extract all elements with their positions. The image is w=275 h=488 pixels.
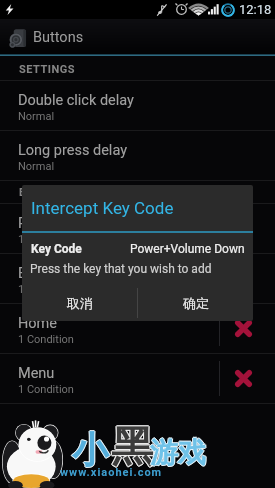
staticText: 确定 bbox=[183, 295, 209, 311]
staticText: Normal bbox=[18, 160, 55, 173]
staticText: 黑 bbox=[111, 422, 153, 475]
button[interactable]: Delete condition bbox=[220, 354, 266, 403]
staticText: 1 Condition bbox=[18, 383, 74, 396]
staticText: 游戏 bbox=[150, 436, 206, 471]
staticText: 1 Condition bbox=[18, 283, 74, 296]
staticText: 黑 bbox=[111, 421, 153, 474]
staticText: Normal bbox=[18, 110, 55, 123]
staticText: 小 bbox=[71, 427, 107, 472]
staticText: Power+Volume Down bbox=[130, 242, 245, 256]
staticText: 1 Condition bbox=[18, 233, 74, 246]
staticText: 小 bbox=[72, 426, 108, 471]
staticText: Key Code bbox=[31, 242, 82, 256]
staticText: 小 bbox=[72, 428, 108, 473]
staticText: 游戏 bbox=[150, 434, 206, 469]
staticText: 游戏 bbox=[149, 435, 205, 470]
staticText: BUTTONS bbox=[19, 186, 73, 199]
staticText: 黑 bbox=[110, 421, 152, 474]
staticText: Intercept Key Code bbox=[31, 198, 174, 218]
button[interactable]: Delete condition bbox=[220, 304, 266, 353]
staticText: 取消 bbox=[67, 295, 93, 311]
button[interactable]: Delete condition bbox=[220, 254, 266, 303]
staticText: Home bbox=[18, 315, 58, 332]
staticText: 黑 bbox=[111, 420, 153, 473]
button[interactable]: 取消 bbox=[22, 284, 137, 321]
staticText: Menu bbox=[18, 365, 55, 382]
staticText: 游戏 bbox=[151, 435, 207, 470]
staticText: Buttons bbox=[33, 29, 84, 46]
button[interactable]: Delete condition bbox=[220, 204, 266, 253]
staticText: 12:18 bbox=[239, 2, 272, 17]
button[interactable]: Menu bbox=[0, 354, 219, 403]
button[interactable]: Power bbox=[0, 204, 219, 253]
staticText: 小 bbox=[72, 427, 108, 472]
staticText: 黑 bbox=[112, 421, 154, 474]
button[interactable]: 确定 bbox=[138, 284, 253, 321]
button[interactable]: Back bbox=[0, 254, 219, 303]
staticText: Back bbox=[18, 265, 50, 282]
staticText: Power bbox=[18, 215, 59, 232]
button[interactable]: Home bbox=[0, 304, 219, 353]
button[interactable]: Long press delay bbox=[0, 131, 275, 180]
staticText: 1 Condition bbox=[18, 333, 74, 346]
button[interactable]: Double click delay bbox=[0, 81, 275, 130]
staticText: www.xiaohei.com bbox=[60, 466, 163, 479]
staticText: Long press delay bbox=[18, 142, 128, 159]
staticText: Double click delay bbox=[18, 92, 134, 109]
staticText: SETTINGS bbox=[19, 63, 75, 76]
staticText: Press the key that you wish to add bbox=[30, 262, 212, 276]
staticText: 游戏 bbox=[150, 435, 206, 470]
staticText: 小 bbox=[73, 427, 109, 472]
